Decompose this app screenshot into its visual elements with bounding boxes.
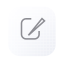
button[interactable]: Compose	[5, 3, 58, 60]
